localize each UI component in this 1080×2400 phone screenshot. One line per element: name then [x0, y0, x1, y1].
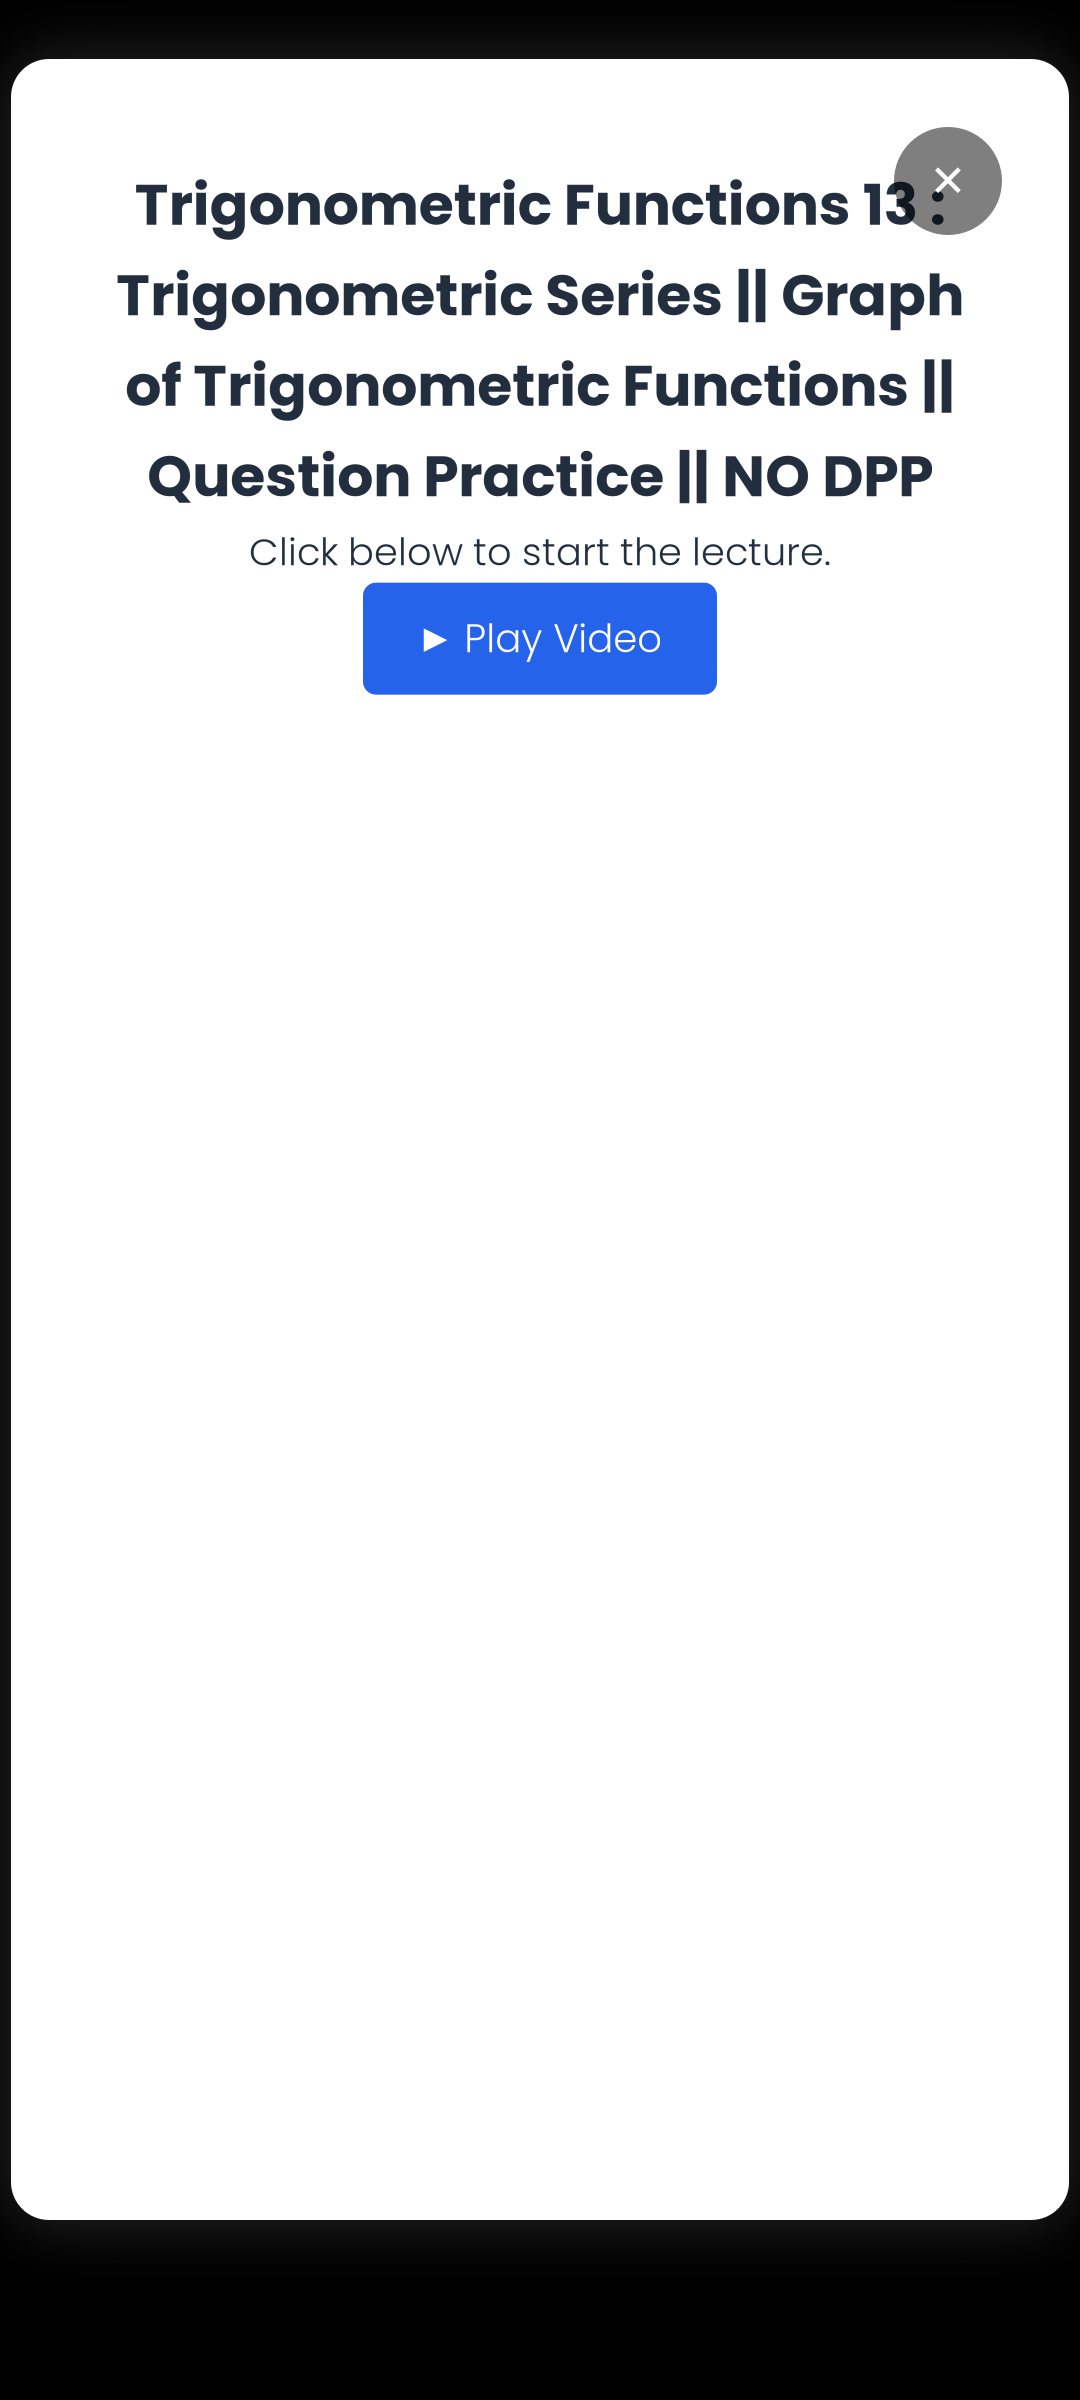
staticText: ✕ [929, 155, 966, 207]
staticText: Trigonometric Functions 13 : Trigonometr… [116, 165, 964, 516]
staticText: Click below to start the lecture. [249, 525, 831, 579]
button[interactable]: Close [894, 127, 1002, 235]
button[interactable]: Play Video [363, 583, 717, 695]
staticText: Play Video [464, 612, 662, 666]
